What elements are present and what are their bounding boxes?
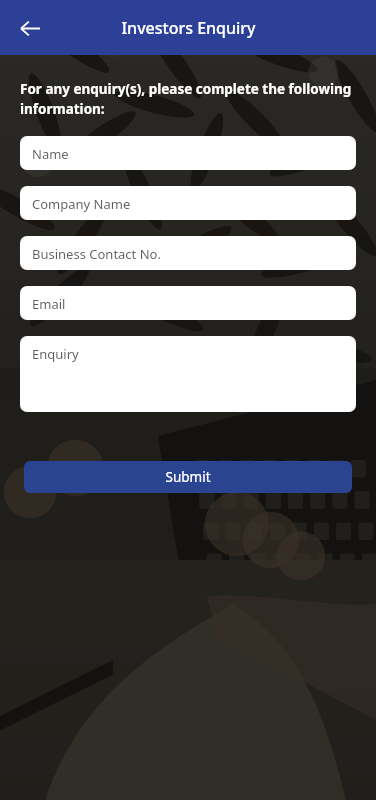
staticText: Company Name [32,195,131,213]
button[interactable]: Submit [24,461,352,493]
staticText: Enquiry [32,345,79,363]
staticText: Submit [165,468,211,486]
button[interactable]: Name [20,136,356,170]
button[interactable]: Enquiry [20,336,356,412]
staticText: For any enquiry(s), please complete the … [20,80,356,118]
button[interactable]: Email [20,286,356,320]
staticText: Name [32,145,69,163]
button[interactable]: Back [12,10,48,46]
staticText: Email [32,295,66,313]
staticText: Business Contact No. [32,245,161,263]
staticText: Investors Enquiry [121,17,256,39]
button[interactable]: Company Name [20,186,356,220]
button[interactable]: Business Contact No. [20,236,356,270]
